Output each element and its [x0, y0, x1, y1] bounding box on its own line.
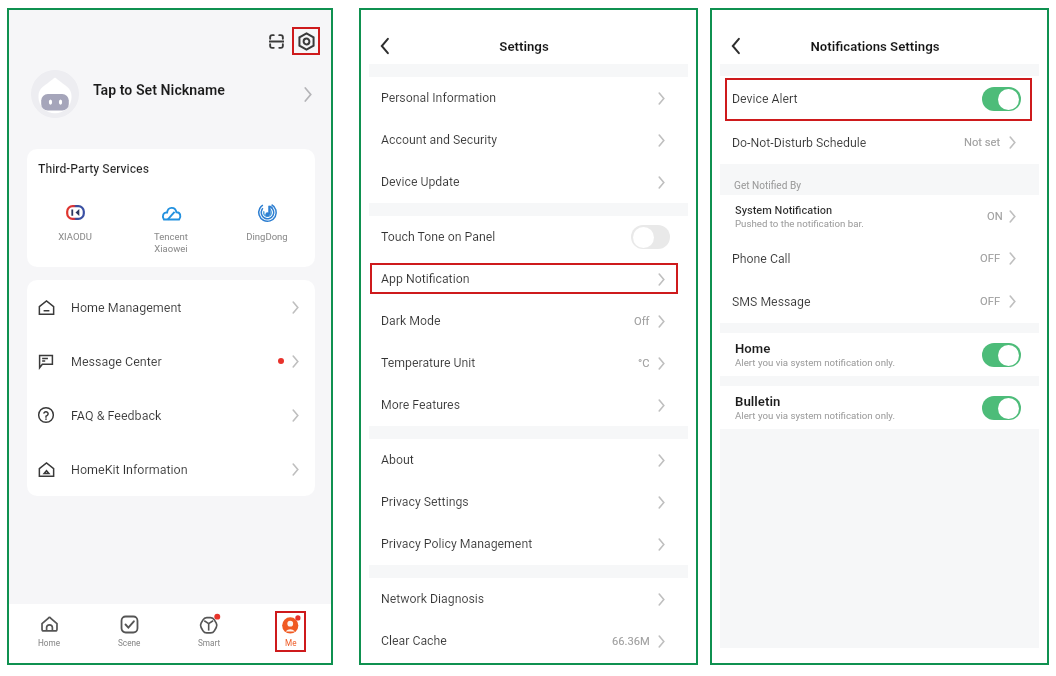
button[interactable]: HomeKit Information	[27, 442, 315, 496]
button[interactable]: XIAODU	[27, 202, 123, 242]
button[interactable]: Me	[250, 604, 331, 663]
button[interactable]: System Notification	[712, 195, 1047, 237]
button[interactable]: FAQ & Feedback	[27, 388, 315, 442]
staticText: System Notification	[735, 204, 833, 217]
staticText: °C	[638, 357, 650, 370]
staticText: Clear Cache	[381, 634, 447, 648]
button[interactable]: Temperature Unit	[361, 342, 696, 384]
button[interactable]: Device Update	[361, 161, 696, 203]
button[interactable]: Home	[712, 333, 1047, 376]
button[interactable]: Scene	[89, 604, 169, 663]
button[interactable]: Privacy Settings	[361, 481, 696, 523]
staticText: Third-Party Services	[38, 162, 149, 176]
staticText: Privacy Policy Management	[381, 537, 533, 551]
staticText: Tap to Set Nickname	[93, 82, 225, 99]
staticText: Privacy Settings	[381, 495, 469, 509]
staticText: Do-Not-Disturb Schedule	[732, 136, 867, 150]
staticText: Alert you via system notification only.	[735, 410, 895, 421]
button[interactable]: Off	[631, 225, 670, 249]
staticText: Home	[735, 341, 771, 356]
staticText: SMS Message	[732, 295, 811, 309]
button[interactable]: DingDong	[219, 202, 315, 242]
staticText: Touch Tone on Panel	[381, 230, 496, 244]
button[interactable]: Phone Call	[712, 237, 1047, 280]
staticText: Message Center	[71, 354, 162, 369]
button[interactable]: App Notification	[361, 258, 696, 300]
button[interactable]: Settings	[292, 27, 320, 55]
button[interactable]: On	[982, 343, 1021, 367]
staticText: DingDong	[246, 231, 288, 242]
staticText: 66.36M	[612, 635, 650, 648]
button[interactable]: Do-Not-Disturb Schedule	[712, 121, 1047, 164]
button[interactable]: Back	[724, 34, 748, 58]
staticText: Scene	[118, 638, 141, 648]
staticText: ON	[987, 210, 1003, 223]
staticText: More Features	[381, 398, 460, 412]
staticText: Pushed to the notification bar.	[735, 218, 864, 229]
button[interactable]: Tap to Set Nickname	[9, 62, 331, 126]
staticText: HomeKit Information	[71, 462, 188, 477]
button[interactable]: Account and Security	[361, 119, 696, 161]
button[interactable]: Smart	[169, 604, 250, 663]
staticText: Dark Mode	[381, 314, 441, 328]
staticText: About	[381, 453, 414, 467]
button[interactable]: On	[982, 396, 1021, 420]
staticText: App Notification	[381, 272, 470, 286]
button[interactable]: Touch Tone on Panel	[361, 216, 696, 258]
staticText: Bulletin	[735, 394, 781, 409]
staticText: Device Alert	[732, 92, 798, 106]
button[interactable]: Dark Mode	[361, 300, 696, 342]
staticText: Phone Call	[732, 252, 791, 266]
staticText: Not set	[964, 136, 1001, 149]
button[interactable]: Network Diagnosis	[361, 578, 696, 620]
button[interactable]: SMS Message	[712, 280, 1047, 323]
staticText: Network Diagnosis	[381, 592, 485, 606]
staticText: Off	[634, 315, 650, 328]
button[interactable]: Clear Cache	[361, 620, 696, 662]
button[interactable]: More Features	[361, 384, 696, 426]
button[interactable]: Message Center	[27, 334, 315, 388]
staticText: Account and Security	[381, 133, 498, 147]
button[interactable]: On	[982, 87, 1021, 111]
button[interactable]: Home	[9, 604, 89, 663]
staticText: Home	[38, 638, 61, 648]
staticText: Temperature Unit	[381, 356, 476, 370]
button[interactable]: Tencent Xiaowei	[123, 202, 219, 254]
button[interactable]: Personal Information	[361, 77, 696, 119]
staticText: Me	[285, 638, 297, 648]
staticText: XIAODU	[58, 231, 92, 242]
staticText: Notifications Settings	[712, 39, 1038, 54]
button[interactable]: Back	[373, 34, 397, 58]
staticText: Device Update	[381, 175, 460, 189]
staticText: Alert you via system notification only.	[735, 357, 895, 368]
button[interactable]: About	[361, 439, 696, 481]
button[interactable]: Device Alert	[712, 76, 1047, 121]
staticText: Smart	[198, 638, 221, 648]
staticText: OFF	[980, 295, 1001, 308]
staticText: FAQ & Feedback	[71, 408, 162, 423]
staticText: Settings	[361, 39, 687, 54]
button[interactable]: Scan	[262, 27, 290, 55]
staticText: Home Management	[71, 300, 182, 315]
button[interactable]: Privacy Policy Management	[361, 523, 696, 565]
button[interactable]: Bulletin	[712, 386, 1047, 429]
staticText: Get Notified By	[734, 180, 801, 192]
staticText: Personal Information	[381, 91, 497, 105]
staticText: OFF	[980, 252, 1001, 265]
button[interactable]: Home Management	[27, 280, 315, 334]
staticText: Tencent Xiaowei	[154, 231, 188, 254]
